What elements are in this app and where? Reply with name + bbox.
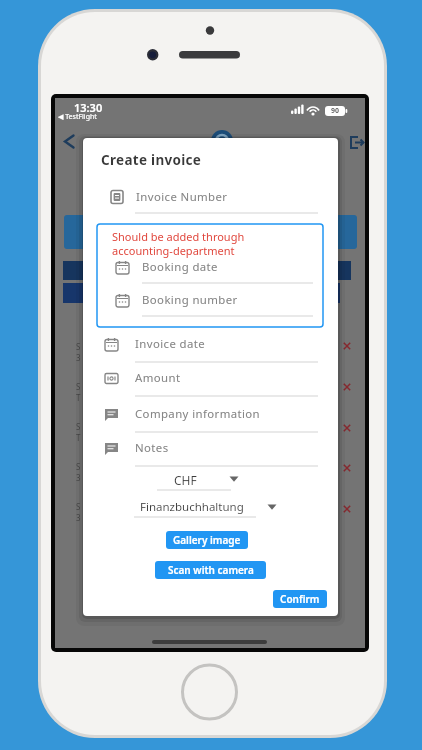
staticText: S [76, 421, 81, 432]
button[interactable]: CHF [157, 469, 241, 490]
staticText: Invoice Number [136, 189, 228, 205]
staticText: CHF [174, 472, 197, 488]
button[interactable] [105, 439, 318, 467]
staticText: S [76, 501, 81, 512]
staticText: Booking number [142, 292, 238, 308]
button[interactable]: Finanzbuchhaltung [134, 497, 256, 517]
staticText: Finanzbuchhaltung [140, 499, 244, 515]
staticText: T [76, 432, 81, 443]
button[interactable] [350, 136, 365, 150]
staticText: Invoice date [135, 336, 206, 352]
staticText: ◀ TestFlight [58, 112, 97, 122]
staticText: Confirm [280, 592, 320, 606]
button[interactable]: Confirm [273, 590, 327, 608]
button[interactable] [116, 258, 313, 284]
staticText: 3 [76, 472, 81, 483]
staticText: Notes [135, 440, 169, 456]
button[interactable] [105, 187, 318, 214]
button[interactable]: Gallery image [166, 531, 248, 549]
staticText: Amount [135, 370, 181, 386]
staticText: S [76, 381, 81, 392]
staticText: Create invoice [101, 151, 202, 167]
staticText: S [76, 461, 81, 472]
staticText: 3 [76, 352, 81, 363]
staticText: S [76, 341, 81, 352]
button[interactable]: Scan with camera [155, 561, 266, 579]
staticText: Scan with camera [168, 563, 254, 577]
button[interactable] [105, 335, 318, 363]
staticText: Should be added through accounting-depar… [112, 229, 245, 258]
staticText: 3 [76, 512, 81, 523]
button[interactable] [116, 291, 313, 317]
button[interactable] [62, 134, 76, 149]
button[interactable] [105, 405, 318, 433]
staticText: T [76, 392, 81, 403]
staticText: 90 [331, 106, 340, 116]
staticText: Gallery image [173, 533, 241, 547]
staticText: Booking date [142, 259, 218, 275]
button[interactable] [105, 369, 318, 397]
staticText: 13:30 [74, 100, 103, 114]
staticText: Company information [135, 406, 261, 422]
